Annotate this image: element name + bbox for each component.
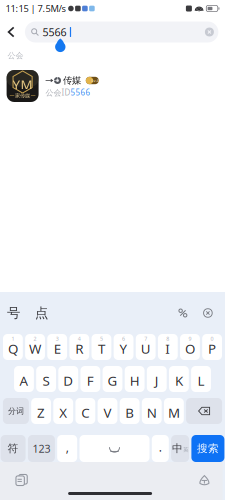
- button[interactable]: 分词: [3, 398, 29, 424]
- button[interactable]: Hide keyboard: [195, 299, 220, 327]
- staticText: 搜索: [197, 442, 219, 455]
- staticText: 点: [35, 305, 48, 321]
- staticText: 英: [183, 446, 188, 453]
- staticText: N: [147, 404, 157, 421]
- staticText: A: [19, 372, 28, 389]
- staticText: 123: [32, 441, 50, 456]
- button[interactable]: J: [147, 366, 167, 392]
- staticText: F: [87, 372, 94, 389]
- staticText: P: [208, 340, 216, 357]
- staticText: B: [125, 404, 134, 421]
- staticText: YM: [13, 75, 33, 93]
- staticText: L: [197, 372, 204, 389]
- staticText: 7: [144, 335, 147, 342]
- button[interactable]: F: [80, 366, 100, 392]
- button[interactable]: B: [120, 398, 139, 424]
- button[interactable]: M: [164, 398, 184, 424]
- staticText: Lv.4: [92, 78, 99, 83]
- staticText: 公会ID: [46, 87, 71, 98]
- button[interactable]: 0: [202, 334, 222, 360]
- staticText: J: [155, 372, 159, 389]
- staticText: G: [107, 372, 117, 389]
- staticText: 5566: [42, 25, 66, 39]
- staticText: 传媒: [63, 75, 81, 86]
- button[interactable]: D: [58, 366, 78, 392]
- staticText: 11:15 | 7.5M/s: [6, 2, 66, 15]
- button[interactable]: 搜索: [191, 435, 224, 462]
- button[interactable]: 8: [158, 334, 178, 360]
- button[interactable]: A: [14, 366, 34, 392]
- button[interactable]: V: [98, 398, 117, 424]
- button[interactable]: L: [191, 366, 211, 392]
- button[interactable]: YM: [0, 64, 225, 108]
- staticText: 3: [56, 335, 59, 342]
- staticText: M: [168, 404, 180, 421]
- staticText: D: [63, 372, 73, 389]
- staticText: W: [29, 340, 41, 357]
- button[interactable]: Clear search: [200, 21, 218, 42]
- staticText: 6: [122, 335, 125, 342]
- button[interactable]: Tools: [170, 299, 195, 327]
- staticText: T: [98, 340, 105, 357]
- button[interactable]: Back: [0, 17, 25, 47]
- button[interactable]: ,: [57, 435, 77, 462]
- staticText: 5566: [71, 87, 91, 98]
- button[interactable]: 符: [1, 435, 26, 462]
- button[interactable]: Input method settings: [190, 469, 218, 491]
- staticText: V: [103, 404, 111, 421]
- staticText: C: [81, 404, 89, 421]
- button[interactable]: 9: [180, 334, 200, 360]
- staticText: 家传媒: [15, 92, 30, 99]
- staticText: O: [185, 340, 195, 357]
- staticText: 公会: [8, 51, 24, 60]
- staticText: 号: [7, 305, 20, 321]
- button[interactable]: [186, 398, 222, 424]
- staticText: 符: [8, 442, 19, 455]
- staticText: .: [159, 439, 162, 455]
- staticText: Q: [8, 340, 18, 357]
- staticText: X: [59, 404, 67, 421]
- button[interactable]: N: [142, 398, 162, 424]
- button[interactable]: .: [152, 435, 169, 462]
- button[interactable]: G: [103, 366, 122, 392]
- staticText: 0: [211, 335, 214, 342]
- button[interactable]: 7: [136, 334, 156, 360]
- staticText: 分词: [8, 406, 24, 416]
- button[interactable]: S: [36, 366, 56, 392]
- button[interactable]: 123: [28, 435, 55, 462]
- button[interactable]: 号: [0, 299, 28, 327]
- staticText: I: [165, 340, 170, 357]
- staticText: Z: [37, 404, 45, 421]
- button[interactable]: 2: [25, 334, 45, 360]
- button[interactable]: X: [53, 398, 73, 424]
- button[interactable]: 5: [91, 334, 111, 360]
- button[interactable]: H: [125, 366, 144, 392]
- staticText: 4: [78, 335, 81, 342]
- staticText: 中: [172, 442, 183, 455]
- button[interactable]: Z: [31, 398, 51, 424]
- button[interactable]: 中: [171, 435, 189, 462]
- staticText: R: [75, 340, 83, 357]
- button[interactable]: C: [75, 398, 95, 424]
- button[interactable]: [79, 435, 149, 462]
- button[interactable]: K: [169, 366, 189, 392]
- button[interactable]: 3: [47, 334, 67, 360]
- button[interactable]: Clipboard: [8, 469, 36, 491]
- button[interactable]: 4: [69, 334, 89, 360]
- staticText: 5: [100, 335, 103, 342]
- staticText: 2: [33, 335, 36, 342]
- button[interactable]: 点: [28, 299, 56, 327]
- staticText: 9: [188, 335, 191, 342]
- button[interactable]: 6: [114, 334, 133, 360]
- button[interactable]: 1: [3, 334, 23, 360]
- staticText: 8: [166, 335, 169, 342]
- staticText: U: [141, 340, 151, 357]
- staticText: K: [175, 372, 183, 389]
- staticText: Y: [120, 340, 128, 357]
- staticText: ,: [66, 439, 69, 455]
- staticText: S: [43, 372, 50, 389]
- staticText: H: [130, 372, 140, 389]
- staticText: 1: [11, 335, 14, 342]
- staticText: E: [54, 340, 61, 357]
